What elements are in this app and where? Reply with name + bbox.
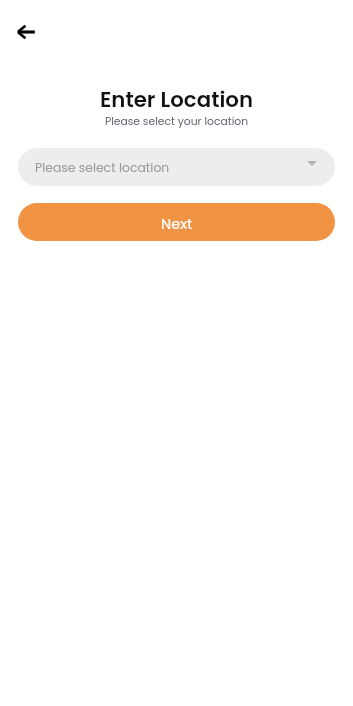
staticText: Enter Location <box>0 85 353 115</box>
button[interactable]: Next <box>18 203 335 241</box>
button[interactable]: Back <box>8 14 44 50</box>
staticText: Next <box>161 214 193 234</box>
button[interactable]: Please select location <box>18 148 335 186</box>
staticText: Please select your location <box>0 114 353 129</box>
staticText: Please select location <box>35 159 307 176</box>
